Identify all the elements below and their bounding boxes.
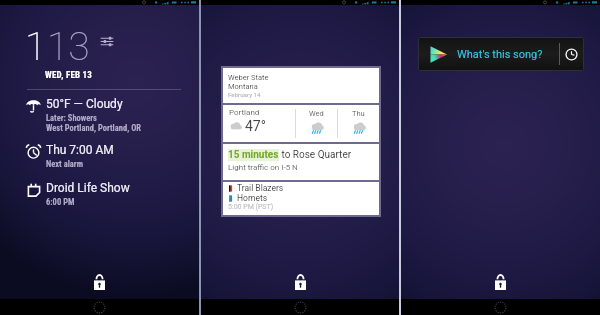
button[interactable]: Weber State xyxy=(223,68,379,103)
staticText: Droid Life Show xyxy=(46,181,130,195)
staticText: Wed xyxy=(309,109,324,118)
staticText: Hornets xyxy=(237,193,268,203)
staticText: Portland xyxy=(229,108,260,117)
button[interactable]: Thu 7:00 AM xyxy=(26,143,196,169)
button[interactable]: 50°F — Cloudy xyxy=(26,97,196,133)
button[interactable]: What's this song? xyxy=(418,37,584,71)
staticText: Trail Blazers xyxy=(237,183,284,193)
staticText: to Rose Quarter xyxy=(279,149,352,161)
staticText: West Portland, Portland, OR xyxy=(46,123,141,133)
button[interactable]: Trail Blazers xyxy=(223,182,379,215)
staticText: 6:00 PM xyxy=(46,197,75,207)
staticText: 15 minutes xyxy=(228,149,279,161)
staticText: WED, FEB 13 xyxy=(45,70,93,81)
staticText: 47° xyxy=(245,118,266,134)
staticText: 13 xyxy=(47,24,90,70)
staticText: Next alarm xyxy=(46,159,83,169)
other: Unlock xyxy=(495,274,506,290)
staticText: 50°F — Cloudy xyxy=(46,97,123,111)
button[interactable]: Settings xyxy=(100,35,114,48)
button[interactable]: Portland xyxy=(223,105,379,142)
staticText: 5:00 PM (PST) xyxy=(228,203,274,211)
button[interactable]: Droid Life Show xyxy=(26,181,196,207)
staticText: Light traffic on I-5 N xyxy=(228,163,298,172)
button[interactable]: 15 minutes xyxy=(223,144,379,180)
other: Unlock xyxy=(295,274,306,290)
other: History xyxy=(565,48,578,61)
other: Unlock xyxy=(94,274,105,290)
staticText: Later: Showers xyxy=(46,113,97,123)
staticText: Weber State xyxy=(228,73,269,82)
staticText: Montana xyxy=(228,82,258,91)
other: Settings xyxy=(100,35,114,48)
staticText: Thu 7:00 AM xyxy=(46,143,114,157)
staticText: Thu xyxy=(352,109,365,118)
staticText: February 14 xyxy=(228,91,261,98)
staticText: What's this song? xyxy=(457,48,543,61)
staticText: 1 xyxy=(25,24,47,70)
